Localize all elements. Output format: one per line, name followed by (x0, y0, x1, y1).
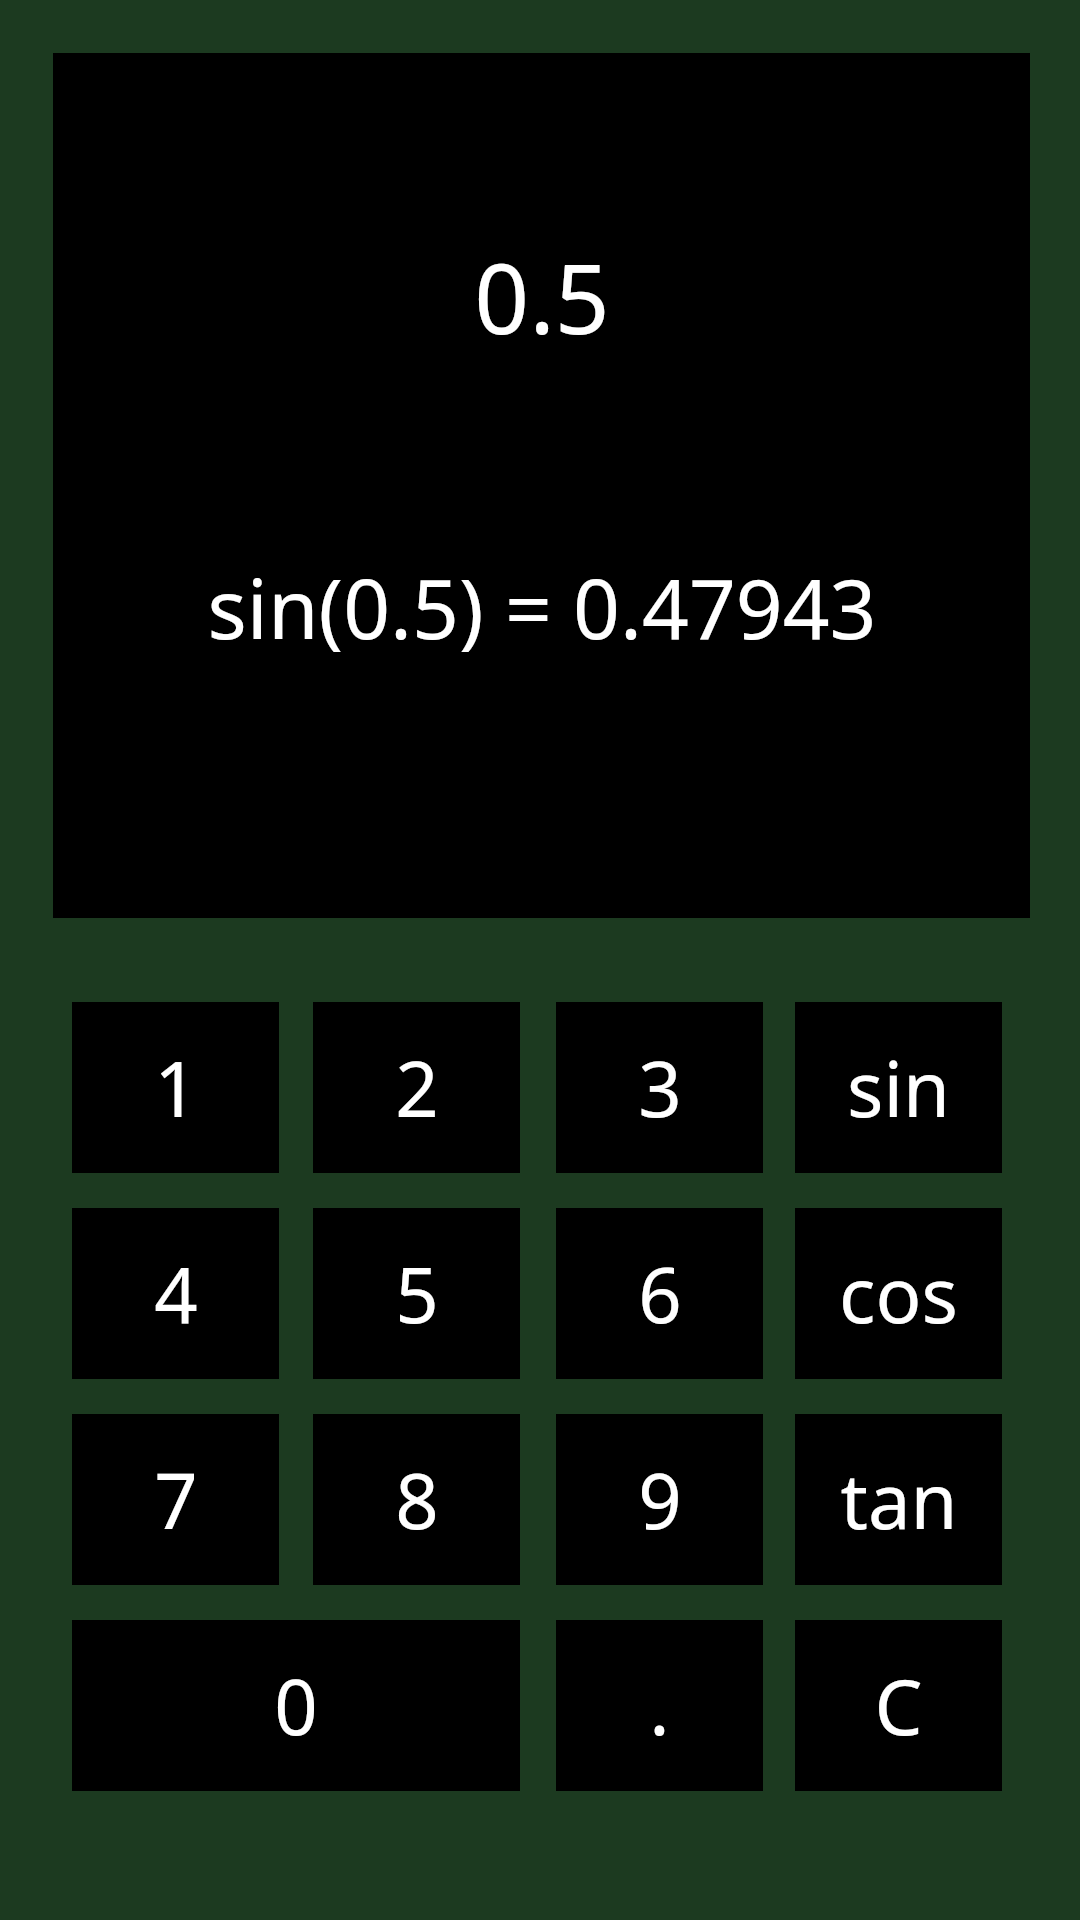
button[interactable]: 2 (313, 1002, 520, 1173)
staticText: 7 (154, 1448, 198, 1552)
button[interactable]: 5 (313, 1208, 520, 1379)
staticText: 2 (395, 1036, 439, 1140)
staticText: C (874, 1654, 923, 1758)
button[interactable]: cos (795, 1208, 1002, 1379)
button[interactable]: 6 (556, 1208, 763, 1379)
button[interactable]: 1 (72, 1002, 279, 1173)
staticText: tan (840, 1448, 958, 1552)
button[interactable]: 7 (72, 1414, 279, 1585)
button[interactable]: tan (795, 1414, 1002, 1585)
button[interactable]: 9 (556, 1414, 763, 1585)
staticText: 4 (154, 1242, 198, 1346)
staticText: sin (847, 1036, 950, 1140)
staticText: sin(0.5) = 0.47943 (207, 551, 877, 663)
button[interactable]: C (795, 1620, 1002, 1791)
button[interactable]: 3 (556, 1002, 763, 1173)
staticText: 0 (274, 1654, 318, 1758)
staticText: 9 (638, 1448, 682, 1552)
staticText: cos (839, 1242, 958, 1346)
button[interactable]: 4 (72, 1208, 279, 1379)
staticText: 6 (638, 1242, 682, 1346)
staticText: 5 (395, 1242, 439, 1346)
staticText: 0.5 (474, 231, 610, 362)
staticText: . (649, 1654, 670, 1758)
button[interactable]: 0 (72, 1620, 520, 1791)
button[interactable]: . (556, 1620, 763, 1791)
staticText: 8 (395, 1448, 439, 1552)
staticText: 1 (154, 1036, 198, 1140)
button[interactable]: 8 (313, 1414, 520, 1585)
button[interactable]: sin (795, 1002, 1002, 1173)
staticText: 3 (638, 1036, 682, 1140)
